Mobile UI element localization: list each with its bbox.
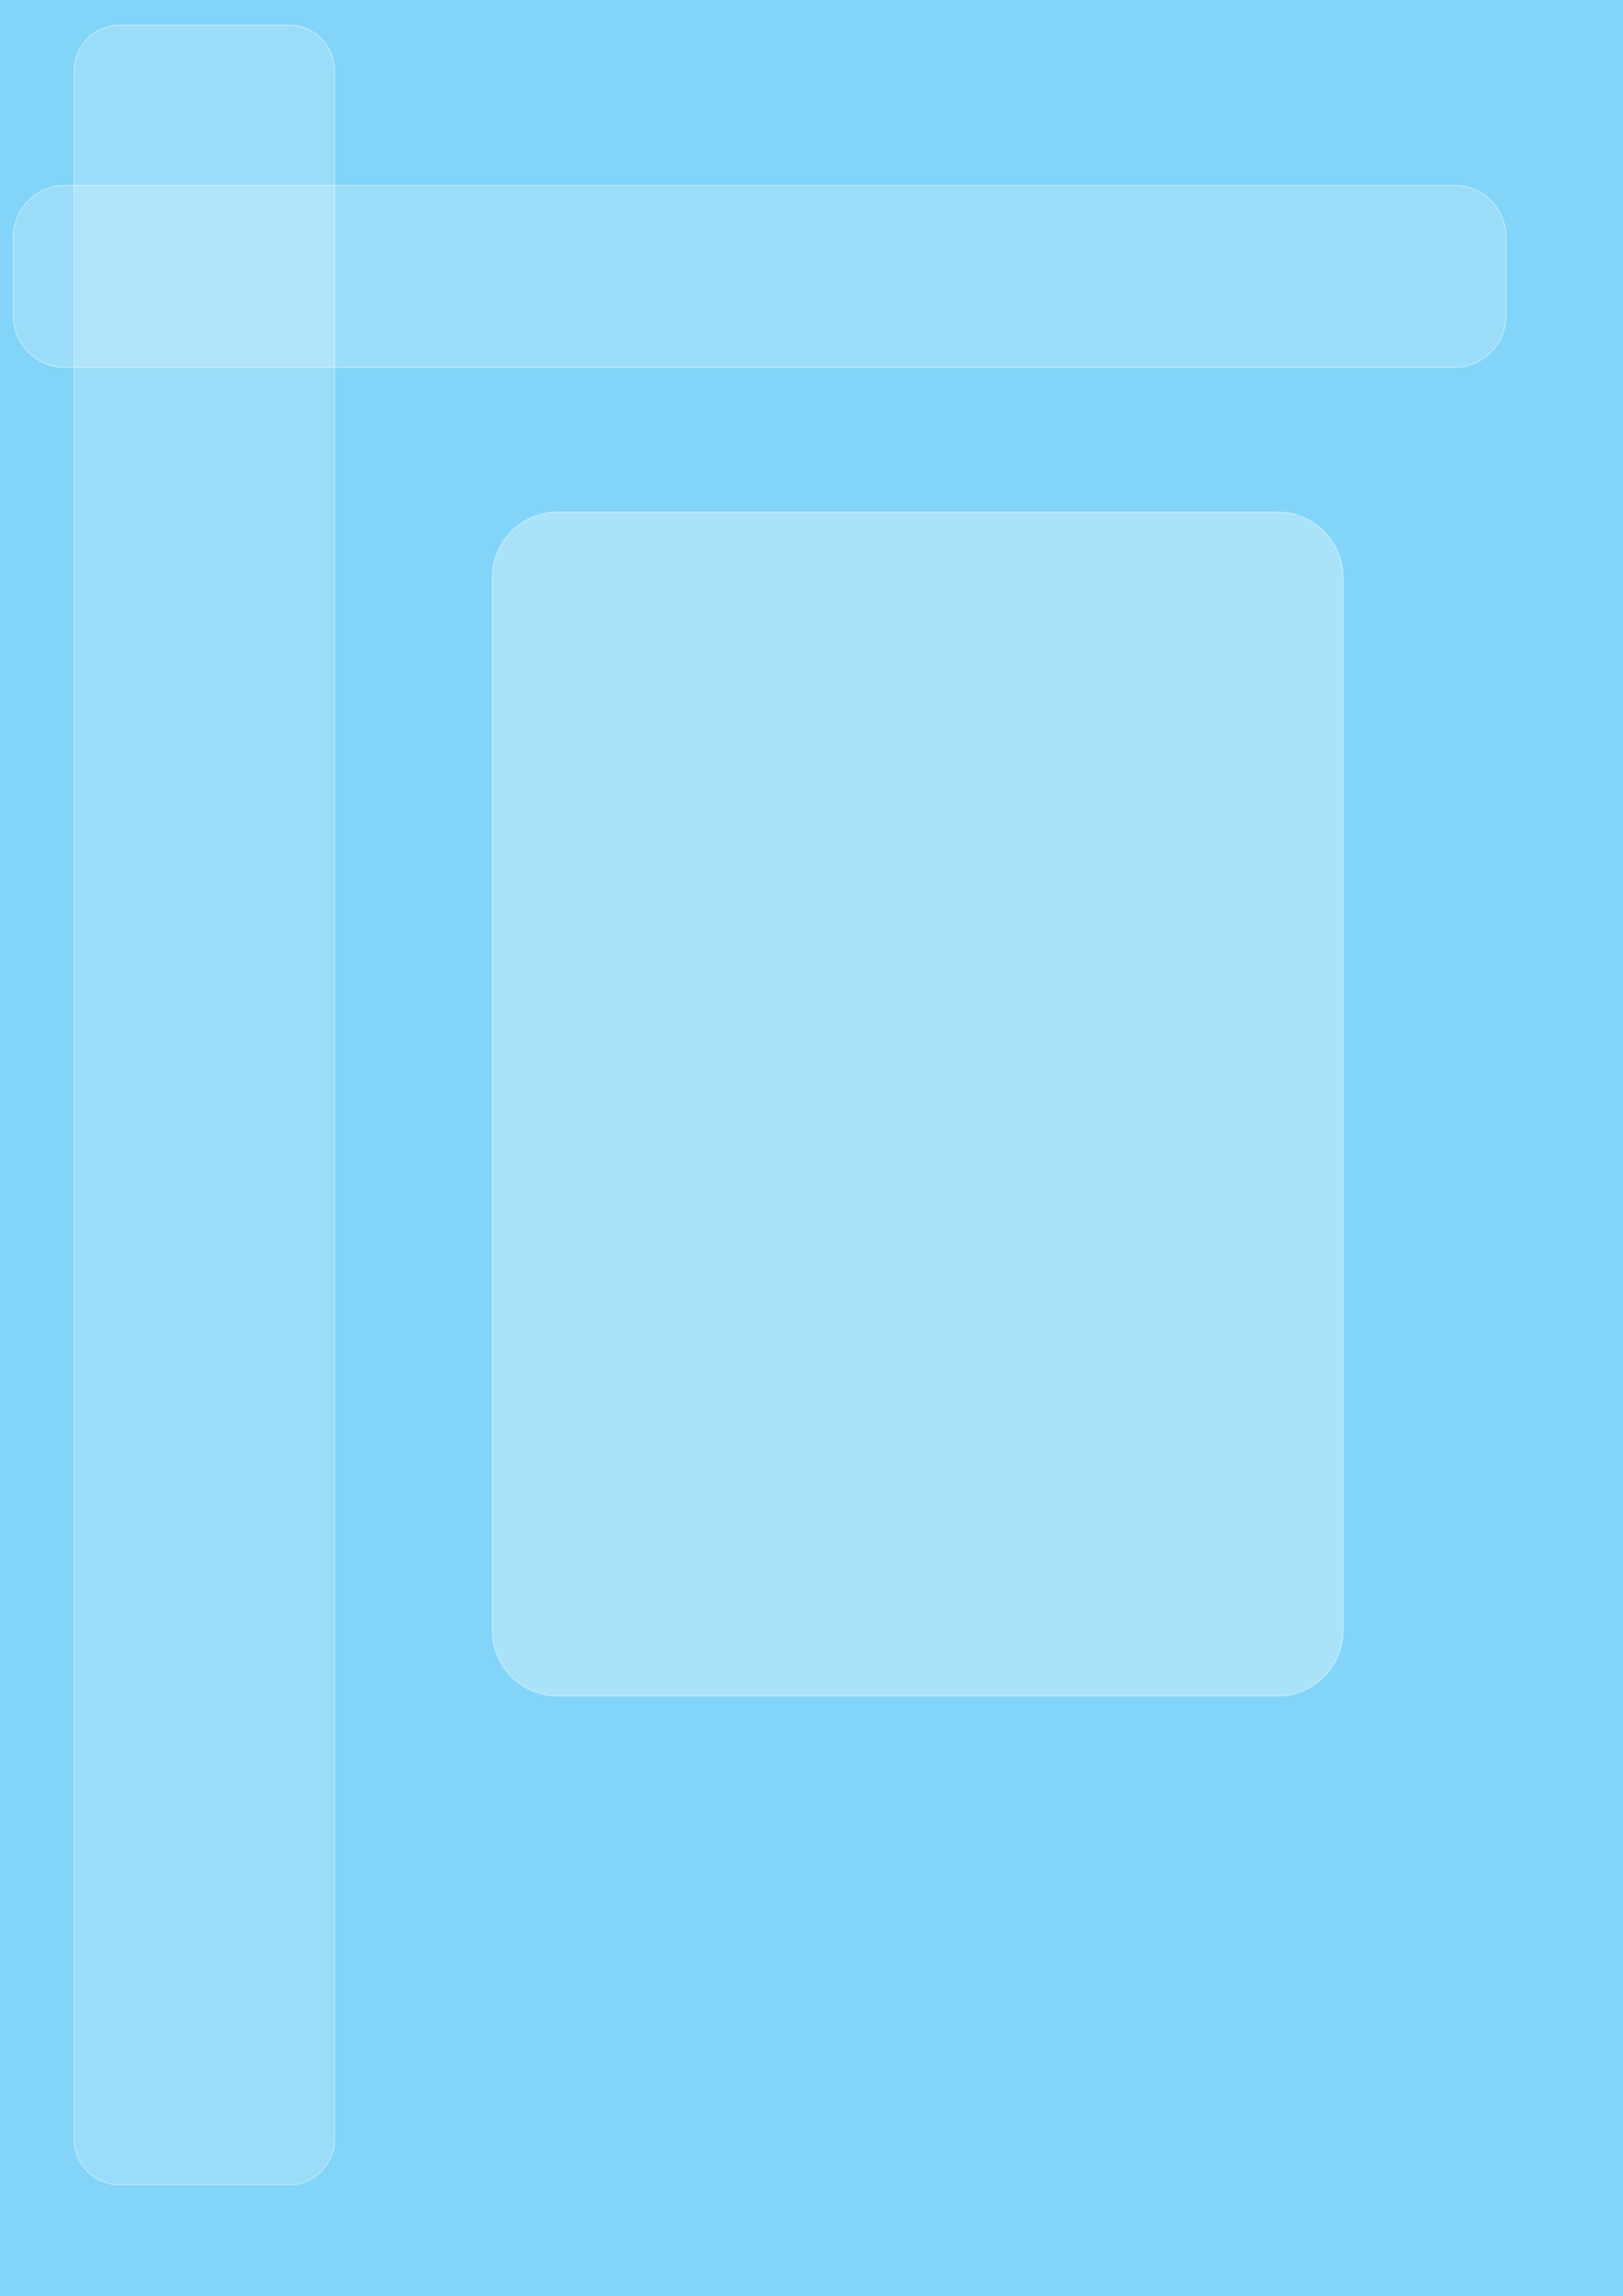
button[interactable]: Top bar [13, 185, 1506, 367]
button[interactable]: Side rail [74, 25, 335, 2185]
